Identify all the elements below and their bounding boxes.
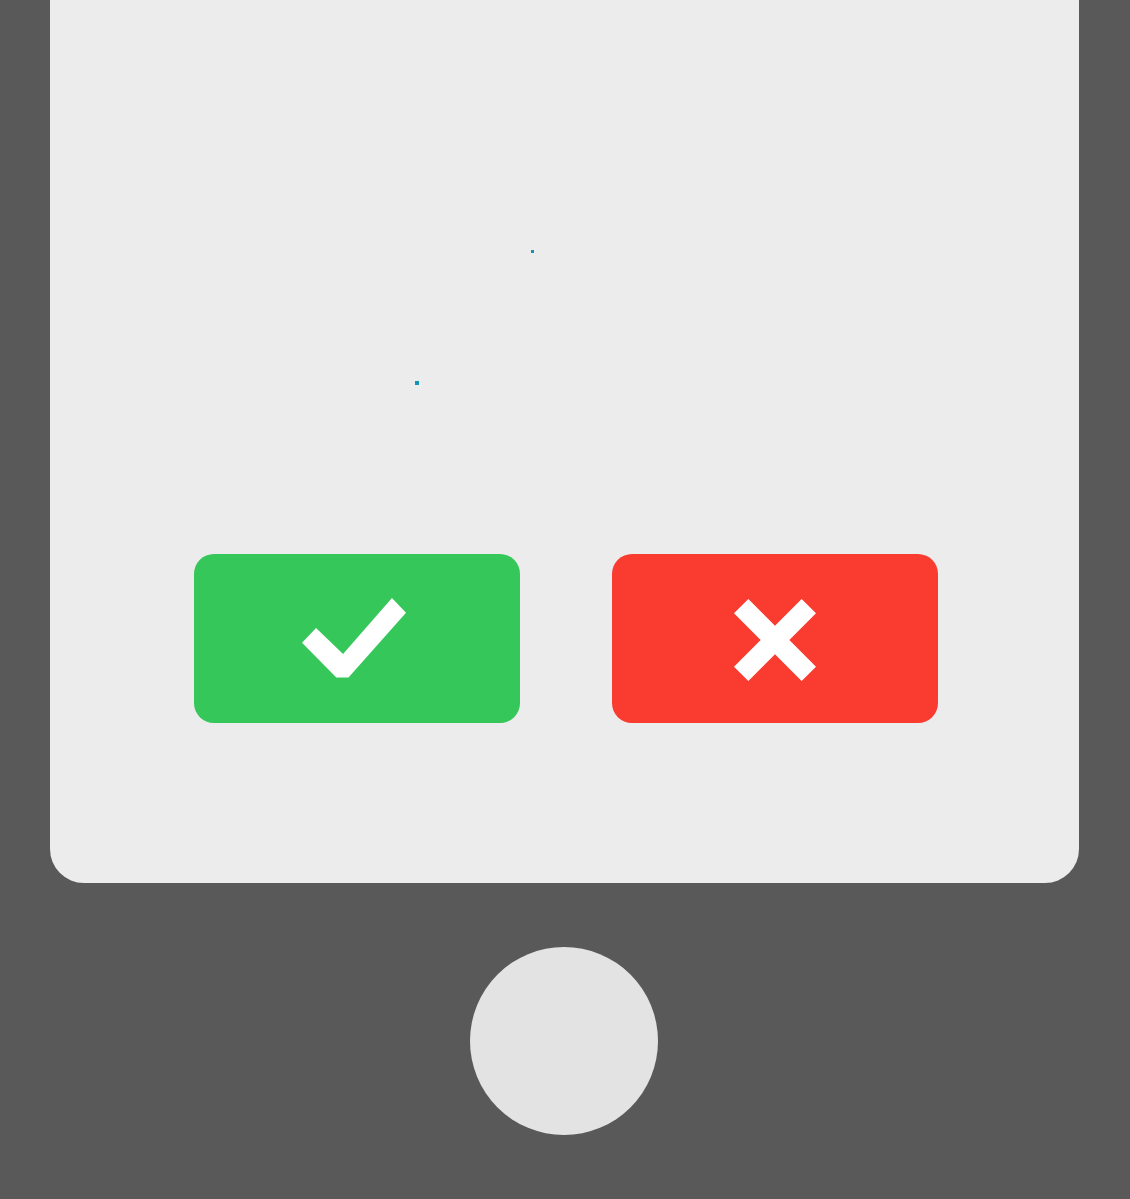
button[interactable]: Decline [612,554,938,723]
button[interactable]: Accept [194,554,520,723]
button[interactable]: Home [470,947,658,1135]
